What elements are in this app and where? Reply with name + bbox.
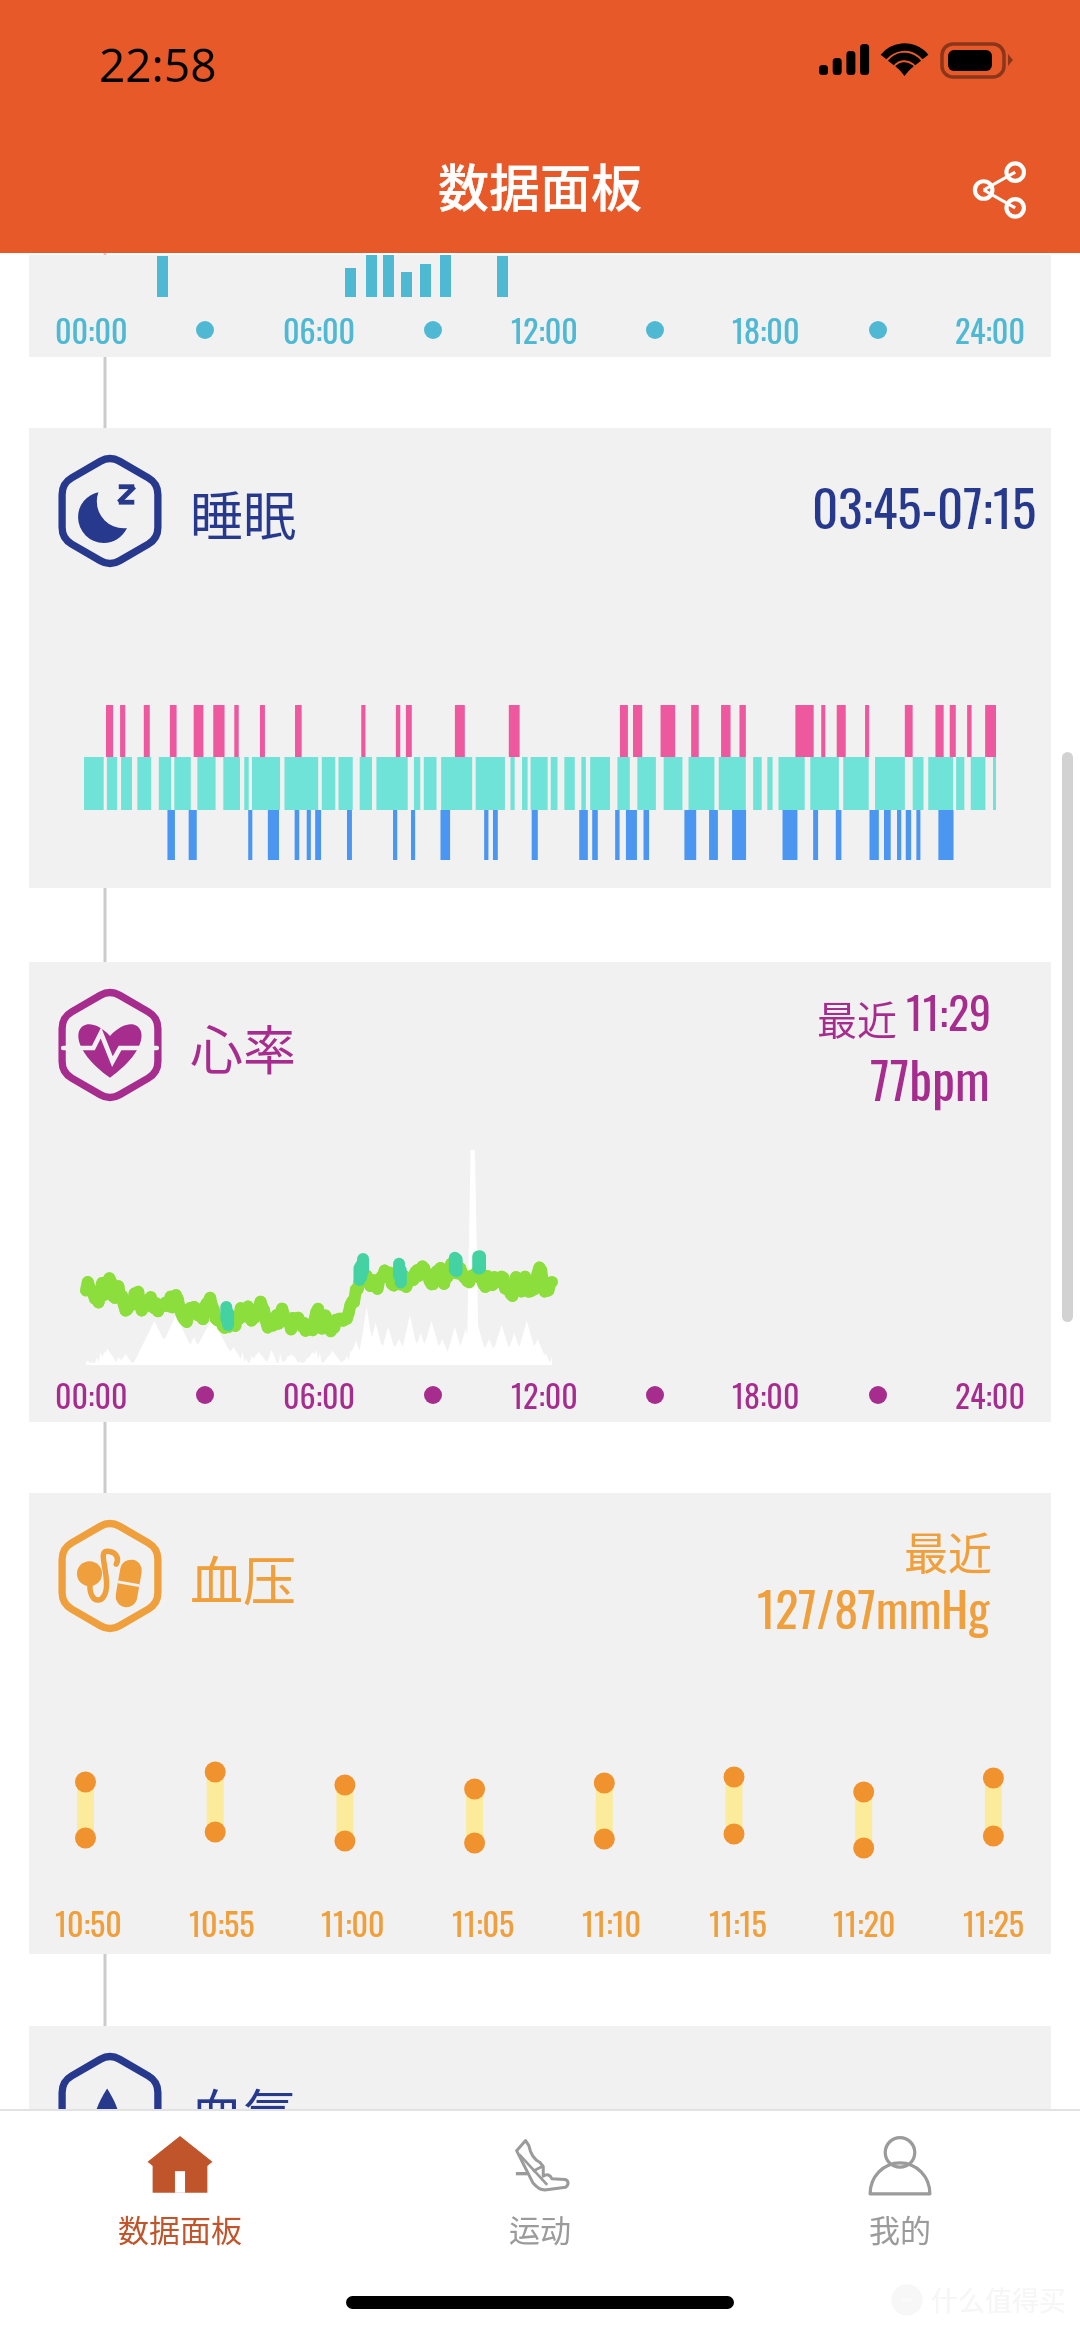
staticText: 数据面板 [438,148,643,222]
staticText: 10:50 [55,1899,122,1946]
staticText: 我的 [869,2206,931,2251]
staticText: 11:10 [582,1899,642,1946]
staticText: 127/87mmHg [757,1572,990,1643]
staticText: 06:00 [283,306,356,353]
staticText: 24:00 [955,1371,1025,1418]
staticText: 11:05 [452,1899,515,1946]
staticText: 11:29 [906,979,992,1044]
button[interactable]: 我的 [720,2109,1080,2294]
staticText: 运动 [509,2206,571,2251]
staticText: 03:45-07:15 [812,468,1037,544]
staticText: 11:15 [709,1899,767,1946]
staticText: 12:00 [511,306,578,353]
staticText: 11:25 [963,1899,1025,1946]
staticText: 77bpm [870,1040,990,1116]
staticText: 12:00 [511,1371,578,1418]
staticText: 00:00 [55,1371,128,1418]
staticText: 什么值得买 [931,2280,1066,2319]
staticText: 18:00 [732,306,800,353]
staticText: 血压 [190,1540,296,1617]
staticText: 11:20 [833,1899,896,1946]
staticText: 睡眠 [190,475,296,552]
button[interactable]: 心率 [29,962,1051,1422]
staticText: 24:00 [955,306,1025,353]
staticText: 心率 [190,1009,296,1086]
staticText: 22:58 [99,33,217,96]
staticText: 06:00 [283,1371,356,1418]
staticText: 00:00 [55,306,128,353]
button[interactable]: 血氧 [29,2026,1051,2226]
staticText: 18:00 [732,1371,800,1418]
button[interactable]: Share [962,152,1038,228]
staticText: 最近 [817,989,897,1047]
button[interactable]: 00:00 [29,255,1051,357]
button[interactable]: 运动 [360,2109,720,2294]
button[interactable]: 数据面板 [0,2109,360,2294]
button[interactable]: 血压 [29,1493,1051,1954]
staticText: 最近 [904,1519,992,1583]
button[interactable]: 睡眠 [29,428,1051,888]
staticText: 血氧 [190,2073,296,2150]
staticText: 数据面板 [118,2206,242,2251]
staticText: 10:55 [189,1899,255,1946]
staticText: 11:00 [321,1899,385,1946]
